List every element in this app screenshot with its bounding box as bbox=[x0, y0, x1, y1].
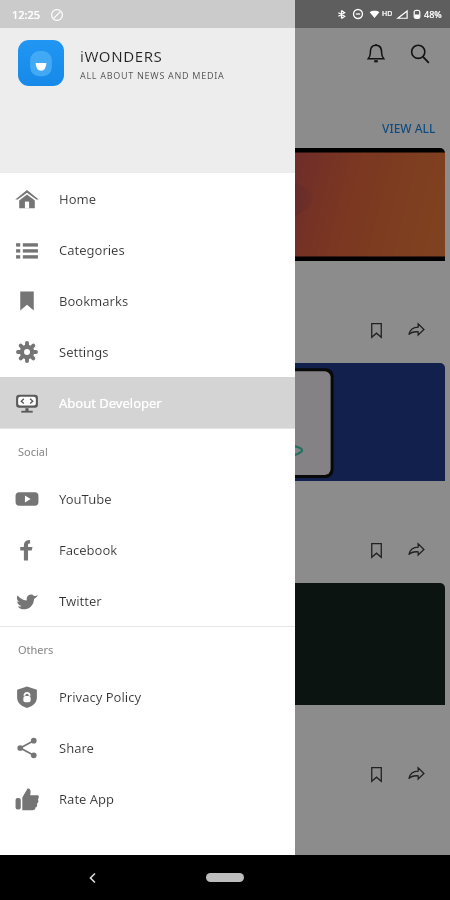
button[interactable]: Bookmark bbox=[361, 759, 391, 789]
button[interactable]: Share bbox=[401, 759, 431, 789]
button[interactable]: Categories bbox=[0, 224, 295, 275]
staticText: Face ID to the bezel bbox=[15, 291, 135, 309]
button[interactable]: YouTube bbox=[0, 473, 295, 524]
staticText: Privacy Policy bbox=[59, 688, 142, 706]
button[interactable]: Galaxy Note 10 Lite bbox=[5, 363, 445, 573]
staticText: 48% bbox=[424, 8, 442, 20]
staticText: Facebook bbox=[59, 541, 118, 559]
staticText: Social bbox=[18, 444, 48, 459]
staticText: HD bbox=[382, 9, 393, 19]
button[interactable]: Rate App bbox=[0, 773, 295, 824]
button[interactable]: Bookmarks bbox=[0, 275, 295, 326]
button[interactable]: Facebook bbox=[0, 524, 295, 575]
staticText: Others bbox=[18, 642, 54, 657]
button[interactable]: Share bbox=[401, 535, 431, 565]
button[interactable]: Bookmark bbox=[361, 535, 391, 565]
staticText: Home bbox=[59, 190, 96, 208]
button[interactable]: About Developer bbox=[0, 377, 295, 428]
staticText: WhatsApp bbox=[156, 626, 294, 663]
staticText: Categories bbox=[59, 241, 125, 259]
staticText: edesign as voice call... bbox=[15, 735, 150, 753]
staticText: iWONDERS bbox=[80, 46, 163, 66]
staticText: Share bbox=[59, 739, 94, 757]
button[interactable]: VIEW ALL bbox=[382, 120, 436, 136]
staticText: Settings bbox=[59, 343, 109, 361]
button[interactable]: Home bbox=[206, 873, 244, 882]
staticText: Bookmarks bbox=[59, 292, 129, 310]
button[interactable]: Notifications bbox=[356, 34, 396, 74]
button[interactable]: Settings bbox=[0, 326, 295, 377]
button[interactable]: Home bbox=[0, 173, 295, 224]
button[interactable]: Share bbox=[401, 315, 431, 345]
button[interactable]: Bookmark bbox=[361, 315, 391, 345]
button[interactable]: WhatsApp bbox=[5, 583, 445, 797]
button[interactable]: Search bbox=[400, 34, 440, 74]
staticText: Rate App bbox=[59, 790, 115, 808]
staticText: Galaxy Note 10 Lite bbox=[15, 490, 133, 508]
staticText: About Developer bbox=[59, 394, 162, 412]
button[interactable]: Back bbox=[85, 870, 101, 886]
button[interactable]: ne could kill the notch bbox=[5, 148, 445, 353]
staticText: YouTube bbox=[59, 490, 112, 508]
button[interactable]: Share bbox=[0, 722, 295, 773]
staticText: ALL ABOUT NEWS AND MEDIA bbox=[80, 69, 225, 81]
button[interactable]: Privacy Policy bbox=[0, 671, 295, 722]
staticText: Twitter bbox=[59, 592, 102, 610]
staticText: 12:25 bbox=[12, 7, 41, 22]
button[interactable]: Twitter bbox=[0, 575, 295, 626]
